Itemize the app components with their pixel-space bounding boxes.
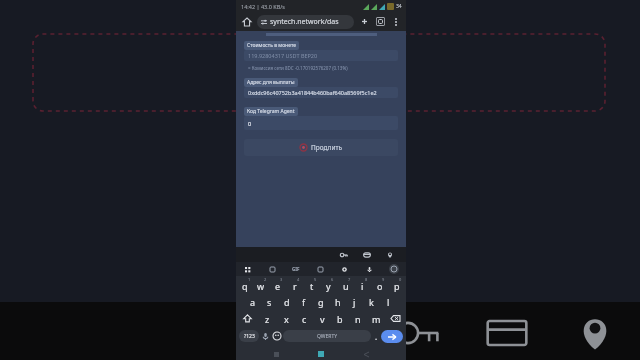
button[interactable]: h	[329, 293, 346, 310]
staticText: .	[375, 331, 378, 342]
staticText: y	[326, 280, 331, 292]
button[interactable]: f	[295, 293, 312, 310]
staticText: d	[284, 296, 290, 308]
button[interactable]: l	[380, 293, 397, 310]
staticText: g	[318, 296, 324, 308]
staticText: s	[267, 296, 272, 308]
staticText: q	[242, 280, 248, 292]
button[interactable]: Passwords	[338, 249, 350, 261]
button[interactable]: d	[278, 293, 295, 310]
staticText: u	[343, 280, 349, 292]
button[interactable]: x	[277, 310, 295, 327]
button[interactable]: 5	[303, 276, 320, 293]
staticText: p	[394, 280, 400, 292]
button[interactable]: Payment cards	[361, 249, 373, 261]
button[interactable]: b	[331, 310, 349, 327]
button[interactable]: a	[245, 293, 261, 310]
staticText: Код Telegram Agent	[247, 108, 295, 115]
button[interactable]: Voice typing	[259, 327, 271, 345]
staticText: 0	[248, 120, 252, 127]
staticText: Продлить	[311, 143, 343, 152]
button[interactable]: 7	[337, 276, 354, 293]
button[interactable]: c	[295, 310, 313, 327]
button[interactable]: Clipboard	[268, 265, 277, 274]
staticText: n	[355, 313, 361, 325]
button[interactable]: Backspace	[385, 310, 405, 327]
button[interactable]: QWERTY	[283, 330, 371, 342]
button[interactable]: Passwords	[396, 310, 442, 356]
button[interactable]: Emoji	[271, 327, 283, 345]
staticText: QWERTY	[317, 333, 338, 340]
button[interactable]: Payment cards	[484, 310, 530, 356]
button[interactable]: Home	[240, 15, 254, 29]
button[interactable]: 6	[320, 276, 337, 293]
staticText: 4	[297, 277, 300, 282]
button[interactable]: 0xddc96c40752b3a41844b460baf640a8569f5c1…	[244, 87, 398, 98]
button[interactable]: More options	[389, 15, 402, 28]
staticText: t	[310, 280, 314, 292]
button[interactable]: Back	[361, 349, 371, 359]
button[interactable]: g	[312, 293, 329, 310]
button[interactable]: Enter	[381, 330, 403, 343]
staticText: i	[361, 280, 364, 292]
button[interactable]: 4	[286, 276, 303, 293]
button[interactable]: 3	[269, 276, 286, 293]
button[interactable]: 119.92804317 USDT BEP20	[244, 50, 398, 61]
staticText: Стоимость в монете	[247, 42, 296, 49]
staticText: syntech.network/das	[270, 17, 339, 27]
button[interactable]: ?123	[239, 330, 259, 342]
button[interactable]: 9	[371, 276, 388, 293]
button[interactable]: GIF	[292, 266, 300, 272]
button[interactable]: 8	[354, 276, 371, 293]
button[interactable]: New tab	[358, 15, 371, 28]
button[interactable]: Shift	[237, 310, 258, 327]
button[interactable]: Recents	[271, 349, 281, 359]
button[interactable]: Stickers	[316, 265, 325, 274]
staticText: 0	[399, 277, 402, 282]
button[interactable]: n	[349, 310, 367, 327]
button[interactable]: syntech.network/das	[257, 15, 354, 29]
button[interactable]: Voice input	[365, 265, 374, 274]
staticText: 7	[348, 277, 351, 282]
staticText: r	[293, 280, 297, 292]
staticText: Адрес для выплаты	[247, 79, 295, 86]
button[interactable]: v	[313, 310, 331, 327]
button[interactable]: 0	[244, 116, 398, 130]
button[interactable]: Profile	[389, 264, 399, 274]
button[interactable]: Settings	[340, 265, 349, 274]
button[interactable]: Addresses	[384, 249, 396, 261]
button[interactable]: z	[258, 310, 277, 327]
staticText: 2	[264, 277, 267, 282]
staticText: m	[372, 313, 381, 325]
staticText: w	[257, 280, 265, 292]
staticText: 8	[365, 277, 368, 282]
button[interactable]: j	[346, 293, 363, 310]
staticText: 9	[382, 277, 385, 282]
button[interactable]: 0	[388, 276, 405, 293]
staticText: v	[320, 313, 325, 325]
staticText: = Комиссия сети 8DC -0.170192576207 (0.1…	[248, 65, 348, 71]
staticText: a	[250, 296, 256, 308]
staticText: o	[377, 280, 383, 292]
staticText: 6	[331, 277, 334, 282]
button[interactable]: 2	[253, 276, 269, 293]
button[interactable]: k	[363, 293, 380, 310]
staticText: z	[265, 313, 270, 325]
staticText: GIF	[292, 266, 300, 272]
staticText: k	[369, 296, 374, 308]
staticText: b	[337, 313, 343, 325]
button[interactable]: Tabs	[374, 15, 387, 28]
button[interactable]: m	[367, 310, 385, 327]
button[interactable]: Home	[316, 349, 326, 359]
staticText: 14:42 | 43.0 KB/s	[241, 3, 285, 10]
staticText: 5	[314, 277, 317, 282]
staticText: h	[335, 296, 341, 308]
button[interactable]: Продлить	[244, 139, 398, 156]
button[interactable]: 1	[237, 276, 253, 293]
button[interactable]: s	[261, 293, 278, 310]
staticText: 0xddc96c40752b3a41844b460baf640a8569f5c1…	[248, 89, 377, 96]
button[interactable]: Addresses	[572, 310, 618, 356]
button[interactable]: .	[371, 327, 381, 345]
button[interactable]: Menu	[243, 265, 252, 274]
staticText: f	[302, 296, 306, 308]
